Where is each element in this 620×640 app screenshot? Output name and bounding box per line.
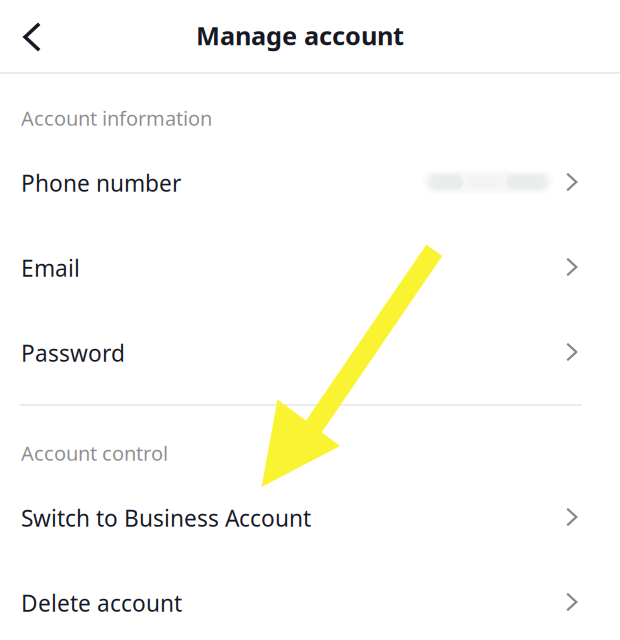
staticText: Password	[21, 338, 125, 368]
staticText: Manage account	[196, 19, 404, 52]
staticText: Account information	[21, 105, 212, 131]
button[interactable]: Password	[0, 309, 620, 394]
staticText: Account control	[21, 440, 168, 466]
staticText: Email	[21, 253, 80, 283]
button[interactable]: Back	[2, 7, 62, 67]
button[interactable]: Delete account	[0, 559, 620, 640]
staticText: Phone number	[21, 168, 181, 198]
staticText: Delete account	[21, 588, 182, 618]
button[interactable]: Phone number	[0, 139, 620, 224]
staticText: Switch to Business Account	[21, 503, 311, 533]
button[interactable]: Email	[0, 224, 620, 309]
button[interactable]: Switch to Business Account	[0, 474, 620, 559]
